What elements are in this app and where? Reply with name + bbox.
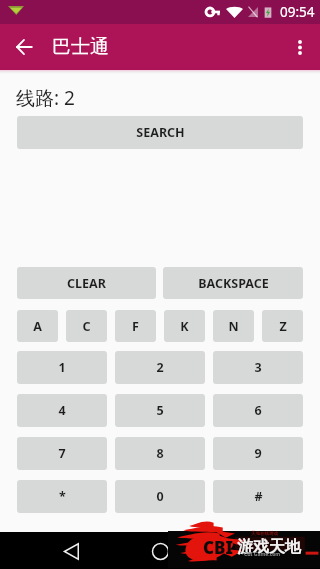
button[interactable]: 5 — [115, 394, 205, 427]
button[interactable]: 9 — [213, 437, 303, 470]
staticText: CLEAR — [67, 275, 106, 292]
button[interactable]: 8 — [115, 437, 205, 470]
staticText: 1 — [58, 359, 66, 376]
button[interactable]: # — [213, 480, 303, 513]
staticText: K — [180, 318, 189, 335]
button[interactable]: Navigate up — [4, 27, 44, 67]
staticText: 0 — [156, 488, 164, 505]
button[interactable]: F — [115, 310, 156, 342]
button[interactable]: A — [17, 310, 58, 342]
staticText: 7 — [58, 445, 66, 462]
staticText: N — [228, 318, 239, 335]
staticText: 3 — [254, 359, 262, 376]
staticText: BACKSPACE — [198, 275, 269, 292]
staticText: 天地在线游戏 — [251, 531, 278, 537]
staticText: F — [132, 318, 139, 335]
button[interactable]: BACKSPACE — [163, 267, 303, 299]
staticText: # — [254, 488, 263, 505]
staticText: SEARCH — [136, 124, 185, 141]
button[interactable]: 3 — [213, 351, 303, 384]
button[interactable]: 0 — [115, 480, 205, 513]
staticText: 线路: 2 — [16, 85, 75, 111]
button[interactable]: 6 — [213, 394, 303, 427]
staticText: 2 — [156, 359, 164, 376]
staticText: CBI Game.com — [244, 551, 281, 558]
staticText: A — [33, 318, 42, 335]
staticText: 4 — [58, 402, 66, 419]
staticText: 5 — [156, 402, 164, 419]
staticText: 9 — [254, 445, 262, 462]
button[interactable]: Home — [142, 533, 178, 569]
button[interactable]: C — [66, 310, 107, 342]
button[interactable]: More options — [280, 27, 320, 67]
staticText: 6 — [254, 402, 262, 419]
button[interactable]: CLEAR — [17, 267, 156, 299]
staticText: 游戏天地 — [237, 537, 301, 557]
button[interactable]: * — [17, 480, 107, 513]
button[interactable]: Recent apps — [231, 533, 267, 569]
button[interactable]: Back — [53, 533, 89, 569]
staticText: 09:54 — [280, 3, 315, 21]
staticText: * — [59, 488, 66, 505]
button[interactable]: 4 — [17, 394, 107, 427]
button[interactable]: K — [164, 310, 205, 342]
staticText: C — [82, 318, 91, 335]
button[interactable]: Z — [262, 310, 303, 342]
staticText: 8 — [156, 445, 164, 462]
button[interactable]: 2 — [115, 351, 205, 384]
button[interactable]: N — [213, 310, 254, 342]
staticText: CBI — [203, 536, 233, 559]
staticText: Z — [279, 318, 287, 335]
button[interactable]: 7 — [17, 437, 107, 470]
staticText: 巴士通 — [52, 35, 109, 59]
button[interactable]: 1 — [17, 351, 107, 384]
button[interactable]: SEARCH — [17, 116, 303, 149]
